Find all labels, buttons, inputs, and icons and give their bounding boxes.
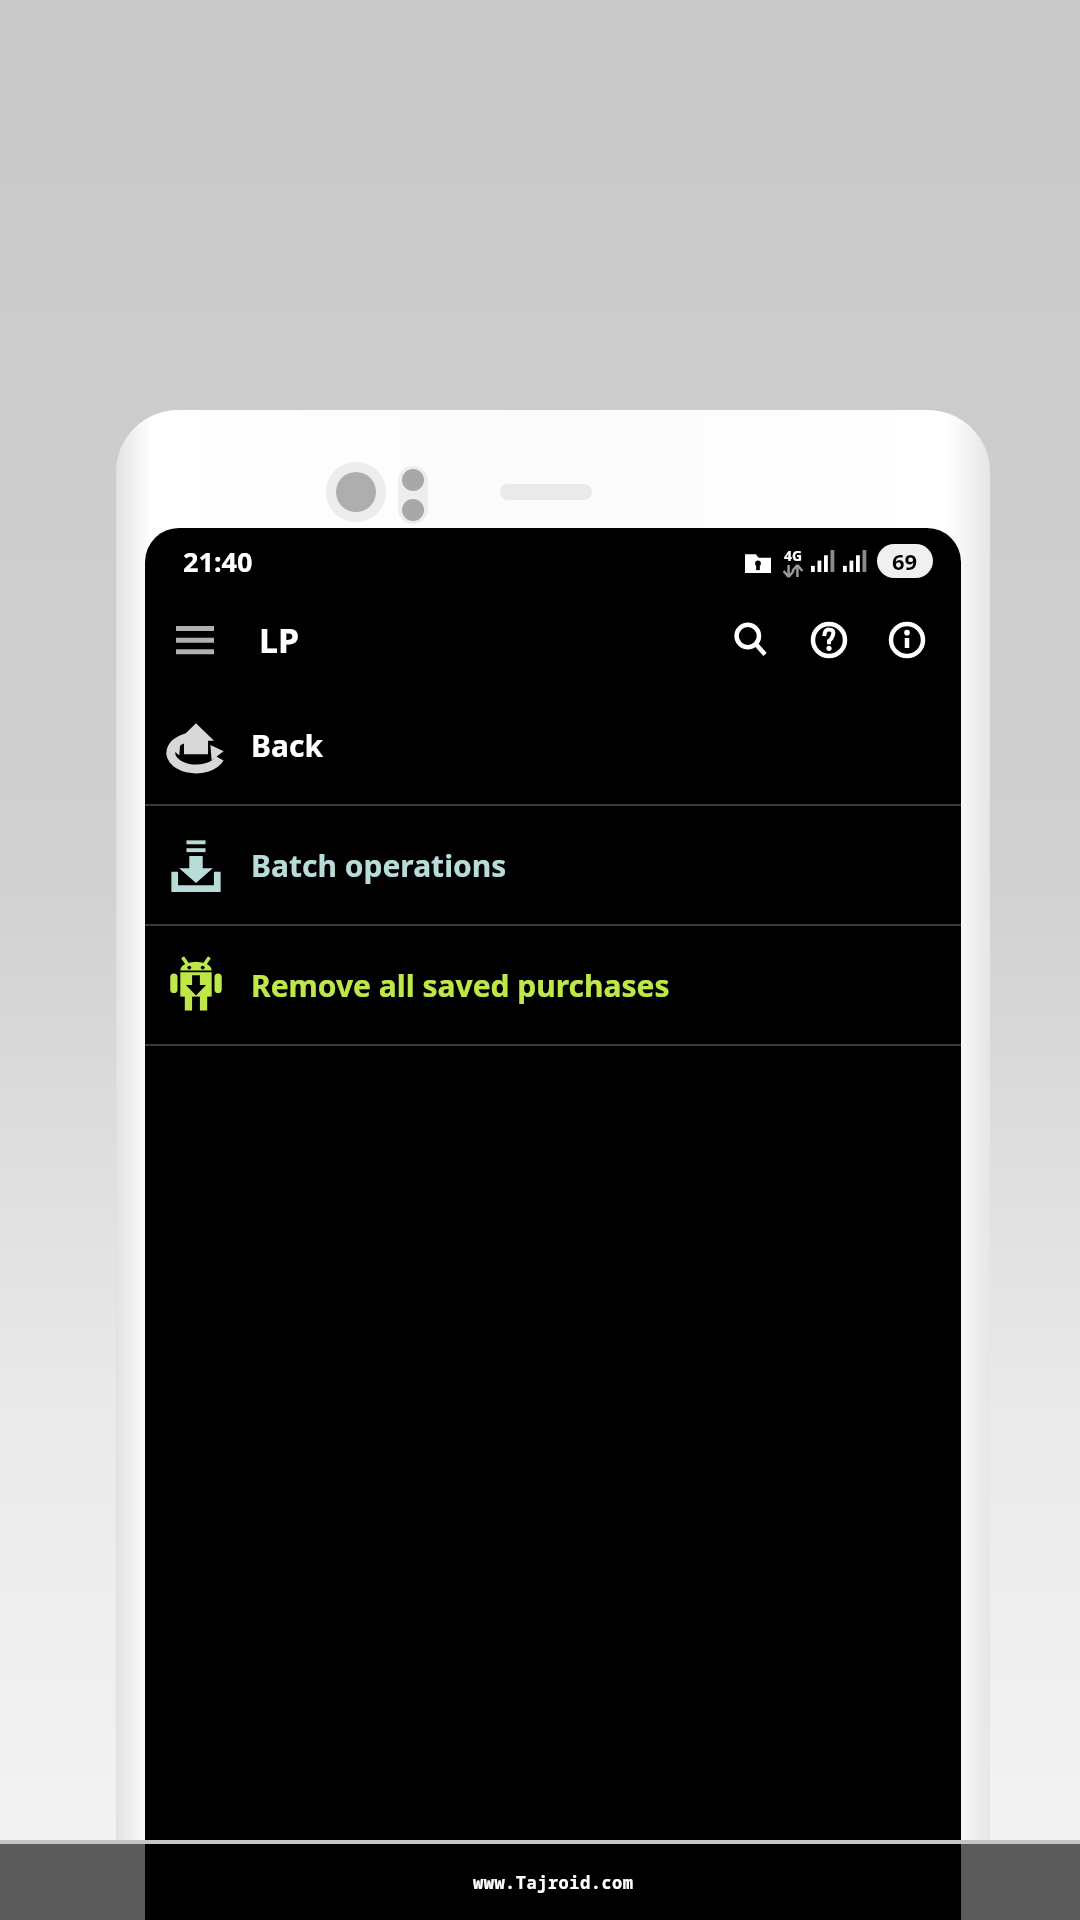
button[interactable]: Remove all saved purchases bbox=[145, 926, 961, 1044]
button[interactable]: Information bbox=[879, 612, 935, 668]
button[interactable]: Back bbox=[145, 686, 961, 804]
staticText: Back bbox=[251, 725, 323, 766]
button[interactable]: Help bbox=[801, 612, 857, 668]
button[interactable]: Search bbox=[723, 612, 779, 668]
button[interactable]: Open navigation menu bbox=[159, 604, 231, 676]
button[interactable]: LP bbox=[259, 617, 300, 663]
staticText: 69 bbox=[892, 546, 918, 576]
button[interactable]: Batch operations bbox=[145, 806, 961, 924]
staticText: Remove all saved purchases bbox=[251, 965, 670, 1006]
staticText: 21:40 bbox=[183, 543, 253, 580]
staticText: LP bbox=[259, 617, 300, 663]
staticText: Batch operations bbox=[251, 845, 507, 886]
staticText: www.Tajroid.com bbox=[473, 1871, 634, 1894]
staticText: 4G bbox=[784, 546, 803, 565]
